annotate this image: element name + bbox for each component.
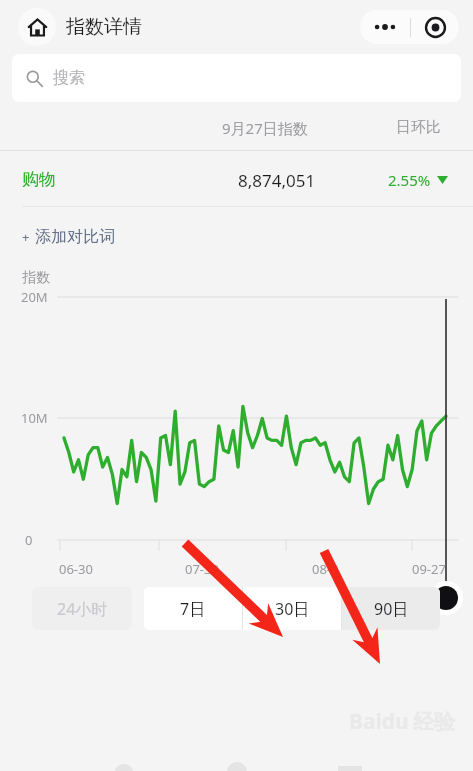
staticText: 搜索 <box>53 68 85 88</box>
staticText: 9月27日指数 <box>222 118 308 138</box>
staticText: 30日 <box>275 598 310 620</box>
staticText: 0 <box>25 531 33 549</box>
button[interactable]: 7日 <box>144 587 242 630</box>
staticText: 经验 <box>413 709 455 735</box>
staticText: 日环比 <box>396 118 441 137</box>
staticText: 07-30 <box>185 560 219 578</box>
staticText: 指数 <box>22 269 50 287</box>
staticText: 购物 <box>22 169 56 190</box>
button[interactable]: Home <box>18 8 56 46</box>
staticText: 7日 <box>180 598 206 620</box>
staticText: 10M <box>21 409 48 427</box>
staticText: 08-2 <box>312 560 339 578</box>
button[interactable]: 搜索 <box>12 54 461 102</box>
button[interactable]: 购物 <box>0 151 473 206</box>
staticText: 添加对比词 <box>35 227 115 247</box>
staticText: Baidu <box>349 707 409 736</box>
button[interactable]: + <box>20 225 117 249</box>
button[interactable]: More options <box>360 10 410 44</box>
staticText: 指数详情 <box>66 15 142 39</box>
staticText: 24小时 <box>57 598 108 620</box>
staticText: 09-27 <box>412 560 446 578</box>
button[interactable]: 30日 <box>243 587 341 630</box>
staticText: 90日 <box>374 598 409 620</box>
staticText: 06-30 <box>59 560 93 578</box>
staticText: 8,874,051 <box>238 169 316 192</box>
button[interactable]: 90日 <box>342 587 440 630</box>
staticText: 20M <box>21 288 48 306</box>
button[interactable]: 24小时 <box>32 587 132 630</box>
button[interactable]: Record <box>411 10 459 44</box>
staticText: + <box>22 228 30 246</box>
staticText: 2.55% <box>388 170 431 190</box>
